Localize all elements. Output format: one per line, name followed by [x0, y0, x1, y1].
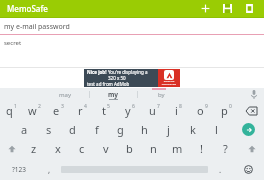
- staticText: t: [102, 103, 106, 118]
- staticText: .: [219, 164, 222, 175]
- staticText: 9: [205, 103, 208, 110]
- button[interactable]: my e-mail password: [0, 22, 264, 32]
- staticText: my: [108, 90, 119, 99]
- button[interactable]: l: [206, 120, 230, 139]
- staticText: u: [149, 103, 156, 118]
- staticText: !: [200, 141, 203, 156]
- staticText: r: [78, 103, 83, 118]
- staticText: c: [79, 141, 85, 156]
- button[interactable]: n: [143, 139, 167, 158]
- button[interactable]: Go: [232, 120, 264, 139]
- staticText: 8: [179, 103, 182, 110]
- staticText: m: [172, 141, 183, 156]
- button[interactable]: a: [14, 120, 38, 139]
- staticText: x: [55, 141, 61, 156]
- button[interactable]: e: [46, 101, 70, 120]
- staticText: z: [31, 141, 37, 156]
- staticText: test ad from AdMob: [87, 81, 130, 87]
- button[interactable]: .: [208, 158, 232, 180]
- staticText: by: [158, 91, 165, 99]
- button[interactable]: v: [95, 139, 119, 158]
- staticText: q: [6, 103, 13, 118]
- button[interactable]: i: [166, 101, 190, 120]
- staticText: b: [126, 141, 133, 156]
- button[interactable]: c: [71, 139, 95, 158]
- button[interactable]: w: [23, 101, 46, 120]
- staticText: 6: [132, 103, 135, 110]
- staticText: ,: [48, 164, 51, 175]
- staticText: ?123: [12, 165, 26, 174]
- button[interactable]: Save: [218, 0, 236, 17]
- staticText: 5: [107, 103, 110, 110]
- staticText: Nice job!: [87, 69, 108, 75]
- staticText: p: [221, 103, 228, 118]
- staticText: 1: [14, 103, 17, 110]
- button[interactable]: b: [119, 139, 143, 158]
- button[interactable]: x: [47, 139, 71, 158]
- button[interactable]: secret: [0, 39, 264, 67]
- button[interactable]: k: [182, 120, 206, 139]
- button[interactable]: u: [142, 101, 166, 120]
- staticText: secret: [4, 39, 22, 47]
- staticText: l: [215, 122, 218, 137]
- button[interactable]: ?123: [0, 158, 37, 180]
- staticText: d: [69, 122, 76, 137]
- button[interactable]: h: [134, 120, 158, 139]
- button[interactable]: my: [90, 88, 137, 101]
- staticText: i: [175, 103, 178, 118]
- staticText: 7: [157, 103, 160, 110]
- button[interactable]: g: [110, 120, 134, 139]
- button[interactable]: Shift: [239, 139, 264, 158]
- button[interactable]: ,: [37, 158, 61, 180]
- button[interactable]: s: [38, 120, 62, 139]
- staticText: ?: [223, 141, 228, 156]
- button[interactable]: by: [138, 88, 185, 101]
- staticText: Install this awesome app: [159, 80, 179, 86]
- button[interactable]: r: [70, 101, 94, 120]
- button[interactable]: t: [94, 101, 118, 120]
- button[interactable]: y: [118, 101, 142, 120]
- staticText: 3: [61, 103, 64, 110]
- button[interactable]: m: [167, 139, 191, 158]
- staticText: MemoSafe: [7, 3, 48, 14]
- staticText: f: [95, 122, 99, 137]
- staticText: g: [117, 122, 124, 137]
- staticText: 0: [229, 103, 232, 110]
- button[interactable]: may: [42, 88, 89, 101]
- button[interactable]: p: [214, 101, 238, 120]
- staticText: s: [46, 122, 52, 137]
- staticText: n: [150, 141, 157, 156]
- button[interactable]: d: [62, 120, 86, 139]
- button[interactable]: Emoji: [232, 158, 264, 180]
- button[interactable]: f: [86, 120, 110, 139]
- staticText: w: [28, 103, 37, 118]
- button[interactable]: z: [24, 139, 47, 158]
- staticText: 4: [84, 103, 87, 110]
- staticText: v: [103, 141, 109, 156]
- button[interactable]: q: [0, 101, 23, 120]
- staticText: 2: [38, 103, 41, 110]
- staticText: my e-mail password: [4, 22, 70, 32]
- staticText: h: [141, 122, 148, 137]
- button[interactable]: !: [191, 139, 215, 158]
- staticText: You're displaying a 320 x 50: [108, 69, 156, 81]
- staticText: j: [167, 122, 170, 137]
- button[interactable]: Add: [196, 0, 214, 17]
- staticText: a: [21, 122, 28, 137]
- button[interactable]: o: [190, 101, 214, 120]
- staticText: may: [59, 91, 72, 99]
- staticText: o: [197, 103, 204, 118]
- button[interactable]: Shift: [0, 139, 24, 158]
- staticText: e: [53, 103, 60, 118]
- button[interactable]: ?: [215, 139, 239, 158]
- staticText: y: [125, 103, 131, 118]
- button[interactable]: Nice job!: [84, 69, 180, 87]
- button[interactable]: Lock: [240, 0, 258, 17]
- button[interactable]: Voice input: [244, 88, 264, 101]
- button[interactable]: j: [158, 120, 182, 139]
- staticText: k: [190, 122, 196, 137]
- button[interactable]: Backspace: [238, 101, 264, 120]
